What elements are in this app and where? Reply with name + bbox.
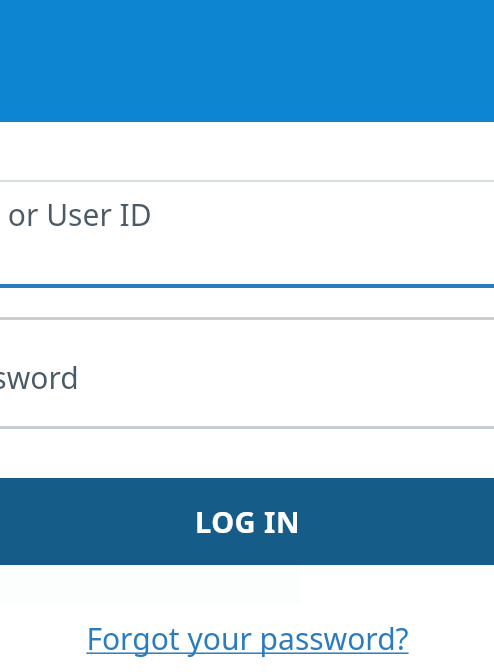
button[interactable]: Email or User ID (0, 180, 494, 288)
staticText: Password (0, 357, 79, 398)
staticText: Email or User ID (0, 194, 152, 235)
button[interactable]: Forgot your password? (0, 612, 494, 664)
button[interactable]: LOG IN (0, 478, 494, 565)
staticText: Forgot your password? (86, 618, 409, 659)
staticText: LOG IN (195, 502, 300, 541)
button[interactable]: Password (0, 317, 494, 429)
